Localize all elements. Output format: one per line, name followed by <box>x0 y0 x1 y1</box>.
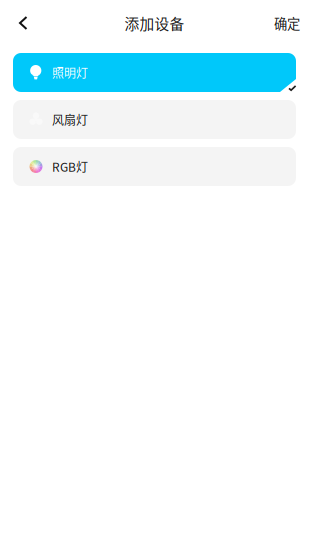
button[interactable]: Back <box>0 7 49 39</box>
button[interactable]: RGB灯 <box>13 147 296 186</box>
button[interactable]: 确定 <box>274 13 309 33</box>
staticText: 照明灯 <box>52 64 88 81</box>
button[interactable]: 风扇灯 <box>13 100 296 139</box>
staticText: 风扇灯 <box>52 111 88 128</box>
button[interactable]: 照明灯 <box>13 53 296 92</box>
staticText: 添加设备 <box>124 12 184 34</box>
staticText: RGB灯 <box>52 158 88 175</box>
staticText: 确定 <box>274 13 300 33</box>
